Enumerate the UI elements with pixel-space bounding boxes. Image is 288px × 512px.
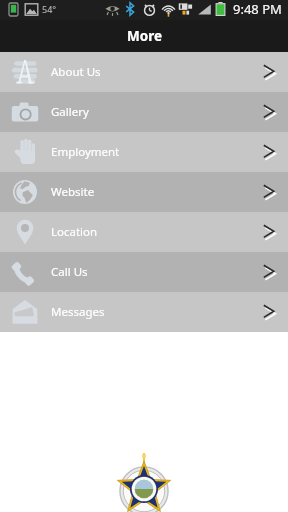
button[interactable]: About Us	[0, 52, 288, 92]
staticText: Location	[51, 224, 98, 240]
staticText: Website	[51, 184, 95, 200]
button[interactable]: Gallery	[0, 92, 288, 132]
staticText: 54°	[42, 3, 57, 15]
button[interactable]: Location	[0, 212, 288, 252]
button[interactable]: Employment	[0, 132, 288, 172]
staticText: Call Us	[51, 264, 88, 280]
staticText: Gallery	[51, 104, 89, 120]
staticText: About Us	[51, 64, 101, 80]
staticText: More	[127, 27, 162, 45]
staticText: Employment	[51, 144, 120, 160]
button[interactable]: Messages	[0, 292, 288, 332]
staticText: 9:48 PM	[233, 0, 282, 18]
button[interactable]: Call Us	[0, 252, 288, 292]
button[interactable]: Website	[0, 172, 288, 212]
staticText: Messages	[51, 304, 105, 320]
